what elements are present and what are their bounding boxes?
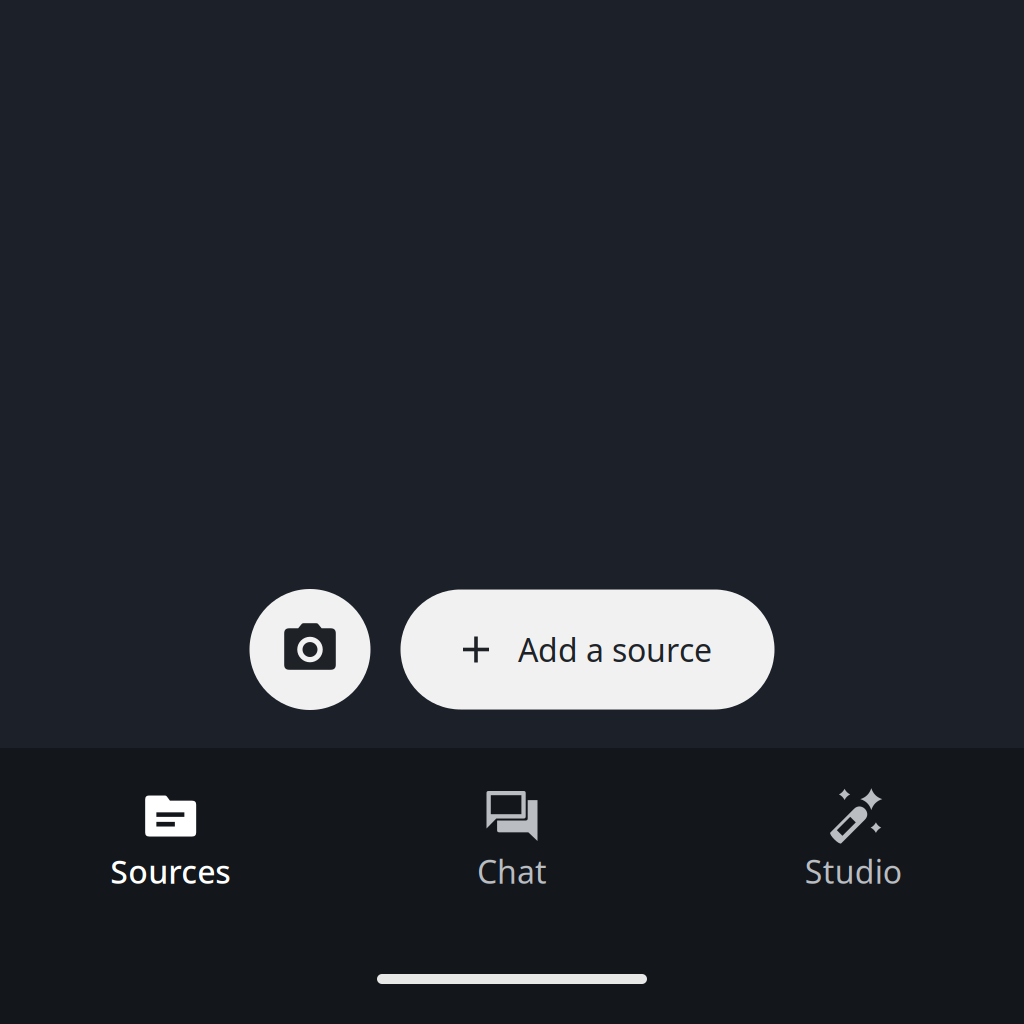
staticText: Add a source xyxy=(518,628,712,671)
button[interactable]: Add a source xyxy=(400,589,774,709)
staticText: Sources xyxy=(110,850,231,892)
button[interactable]: Chat xyxy=(341,792,683,892)
button[interactable]: Sources xyxy=(0,792,341,892)
button[interactable]: Take a photo xyxy=(249,589,370,710)
staticText: Chat xyxy=(477,850,547,892)
staticText: Studio xyxy=(805,850,902,892)
button[interactable]: Studio xyxy=(683,792,1024,892)
